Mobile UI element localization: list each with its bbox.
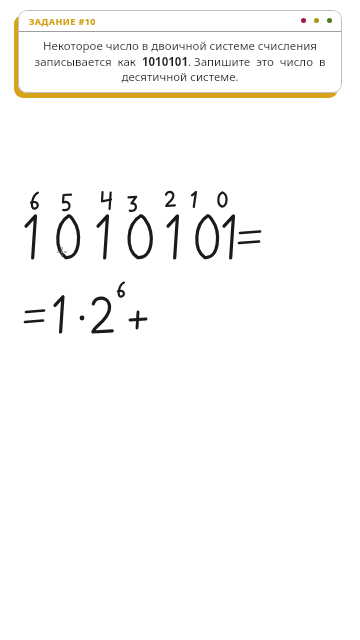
button[interactable]: ЗАДАНИЕ #10: [18, 10, 342, 93]
staticText: Некоторое число в двоичной системе счисл…: [28, 38, 332, 84]
other: Handwritten solution: [0, 0, 360, 640]
staticText: ЗАДАНИЕ #10: [29, 15, 96, 27]
